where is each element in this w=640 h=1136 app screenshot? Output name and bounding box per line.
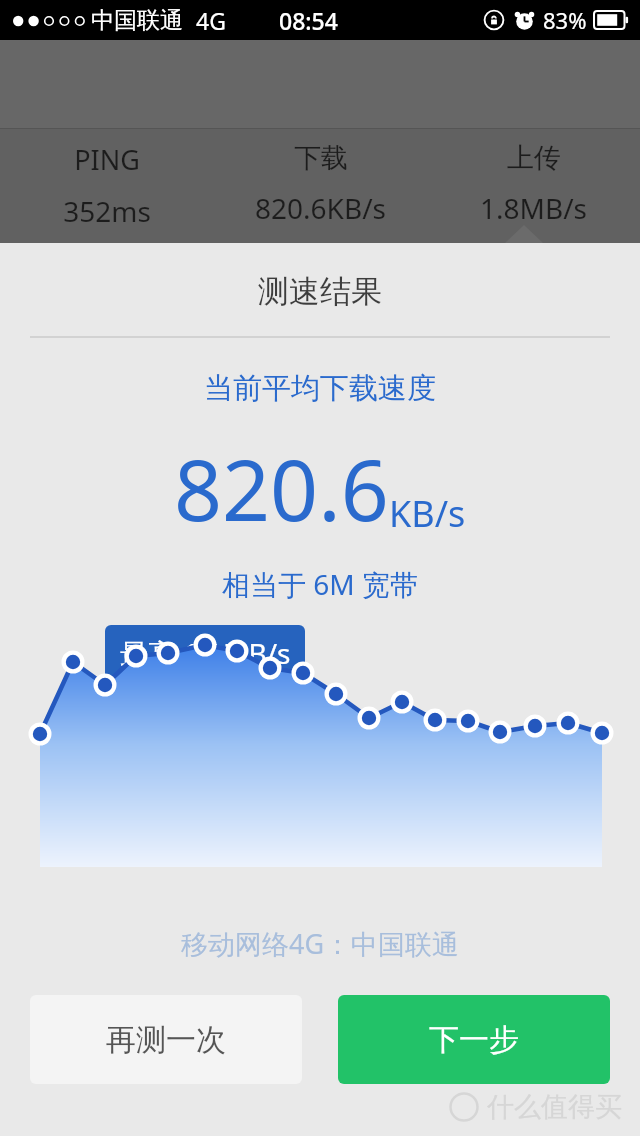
- staticText: 什么值得买: [487, 1090, 622, 1124]
- button[interactable]: 再测一次: [30, 995, 302, 1084]
- staticText: 中国联通: [91, 6, 183, 35]
- staticText: 移动网络4G：中国联通: [0, 925, 640, 962]
- staticText: PING: [74, 141, 140, 178]
- staticText: 1.8MB/s: [480, 189, 587, 227]
- staticText: 83%: [543, 5, 587, 35]
- staticText: 测速结果: [0, 272, 640, 311]
- button[interactable]: 下一步: [338, 995, 610, 1084]
- staticText: 当前平均下载速度: [0, 370, 640, 407]
- staticText: 再测一次: [106, 1021, 226, 1059]
- staticText: 相当于 6M 宽带: [0, 565, 640, 603]
- staticText: 820.6KB/s: [255, 189, 386, 227]
- staticText: 352ms: [63, 192, 151, 230]
- staticText: 4G: [196, 5, 226, 36]
- staticText: 下一步: [429, 1021, 519, 1059]
- staticText: KB/s: [389, 489, 466, 538]
- staticText: 下载: [294, 141, 348, 175]
- staticText: 最高:1.1MB/s: [120, 634, 291, 672]
- staticText: 820.6: [174, 431, 389, 545]
- staticText: 上传: [507, 141, 561, 175]
- staticText: 08:54: [279, 5, 338, 36]
